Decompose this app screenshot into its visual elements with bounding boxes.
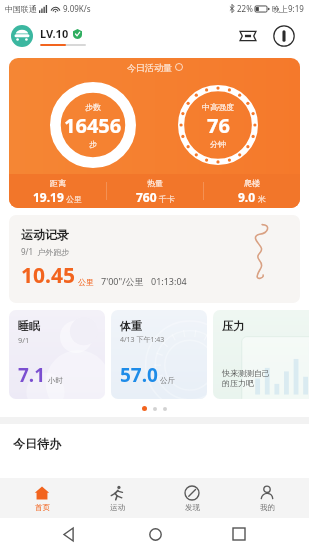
staticText: 中国联通 <box>5 4 37 14</box>
staticText: 公斤 <box>160 376 175 385</box>
button[interactable]: 体重 <box>111 310 207 399</box>
staticText: 中高强度 <box>202 102 234 112</box>
staticText: 距离 <box>50 178 66 188</box>
staticText: 压力 <box>222 319 244 333</box>
staticText: 晚上9:19 <box>272 3 304 14</box>
button[interactable]: 睡眠 <box>9 310 105 399</box>
staticText: 10.45 <box>21 261 75 290</box>
staticText: 的压力吧 <box>222 378 254 388</box>
staticText: 千卡 <box>159 194 175 204</box>
staticText: 睡眠 <box>18 319 40 333</box>
staticText: 快来测测自己 <box>222 368 270 378</box>
button[interactable]: 我的 <box>234 478 300 518</box>
staticText: 步数 <box>85 102 101 112</box>
staticText: 体重 <box>120 319 142 333</box>
button[interactable]: 首页 <box>9 478 75 518</box>
button[interactable]: Device <box>271 23 297 49</box>
staticText: 米 <box>258 194 266 204</box>
staticText: 57.0 <box>120 362 158 388</box>
button[interactable]: 运动 <box>84 478 150 518</box>
staticText: 16456 <box>64 112 122 139</box>
staticText: 今日待办 <box>13 436 61 451</box>
staticText: 9/1 户外跑步 <box>21 246 70 257</box>
staticText: 7.1 <box>18 362 46 388</box>
button[interactable]: Back <box>55 519 85 549</box>
button[interactable]: Recents <box>224 519 254 549</box>
staticText: 爬楼 <box>244 178 260 188</box>
button[interactable]: Home <box>140 519 170 549</box>
staticText: 运动记录 <box>21 227 69 242</box>
staticText: 22% <box>237 3 253 14</box>
button[interactable]: 发现 <box>159 478 225 518</box>
staticText: LV.10 <box>40 26 69 41</box>
staticText: 9.09K/s <box>63 3 91 14</box>
staticText: 热量 <box>147 178 163 188</box>
button[interactable]: LV.10 <box>11 25 86 47</box>
staticText: 我的 <box>260 503 275 512</box>
button[interactable]: 压力 <box>213 310 309 399</box>
staticText: 公里 <box>78 277 94 287</box>
button[interactable]: 运动记录 <box>9 215 300 303</box>
staticText: 7'00"/公里 <box>101 275 144 287</box>
staticText: 4/13 下午1:43 <box>120 335 165 345</box>
staticText: 分钟 <box>210 139 226 149</box>
button[interactable]: Coupons <box>235 23 261 49</box>
staticText: 760 <box>136 189 157 205</box>
staticText: 19.19 <box>33 189 64 205</box>
staticText: 小时 <box>48 376 63 385</box>
staticText: 首页 <box>35 503 50 512</box>
staticText: 01:13:04 <box>151 275 187 287</box>
staticText: 运动 <box>110 503 125 512</box>
staticText: 9.0 <box>238 189 256 205</box>
staticText: 今日活动量 <box>127 62 172 73</box>
staticText: 9/1 <box>18 335 30 345</box>
staticText: 步 <box>89 139 97 149</box>
staticText: 76 <box>207 112 230 139</box>
button[interactable]: 今日活动量 <box>9 58 300 208</box>
staticText: 发现 <box>185 503 200 512</box>
staticText: 公里 <box>66 194 82 204</box>
